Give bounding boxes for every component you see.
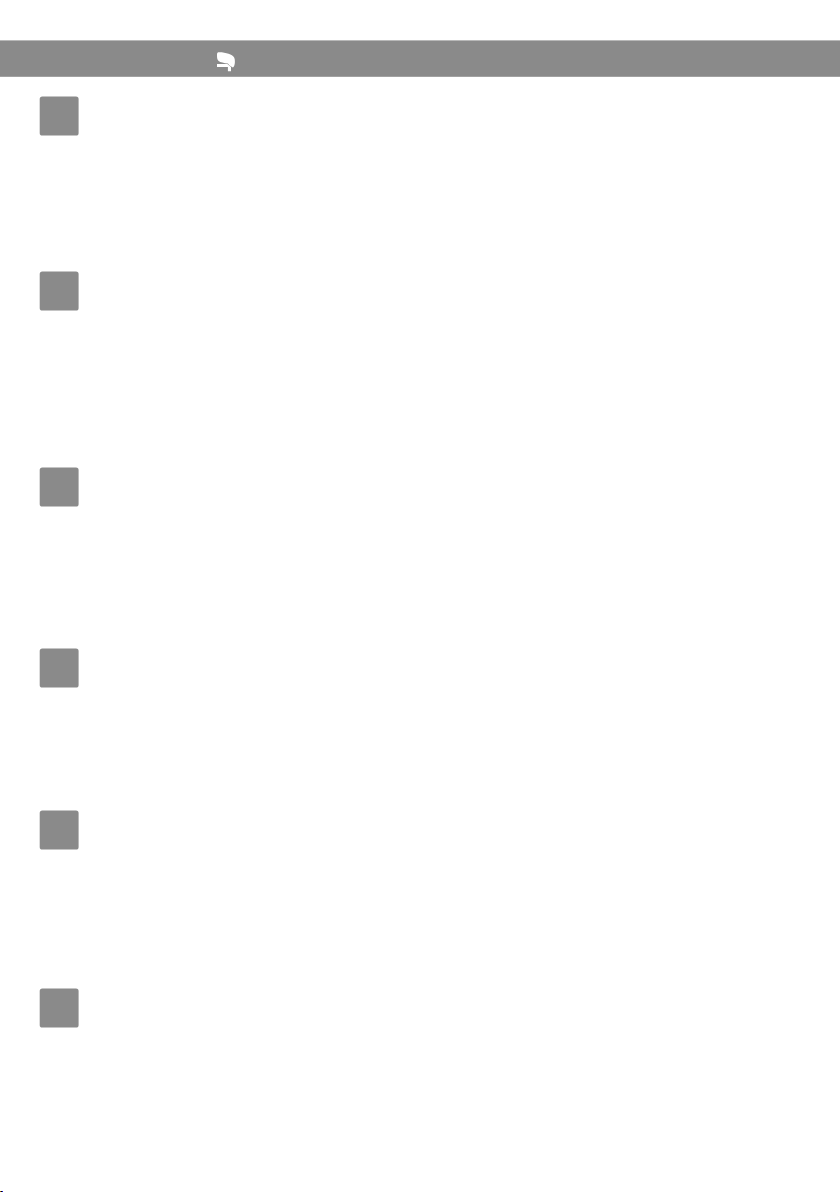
other: Thumbnail	[0, 629, 80, 689]
other: Thumbnail	[0, 252, 80, 312]
button[interactable]: Thumbnail	[0, 791, 840, 969]
other: Thumbnail	[0, 791, 80, 851]
button[interactable]: Thumbnail	[0, 77, 840, 252]
button[interactable]: Thumbnail	[0, 252, 840, 448]
button[interactable]: Thumbnail	[0, 969, 840, 1133]
other: Thumbnail	[0, 448, 80, 508]
other: Thumbnail	[0, 77, 80, 137]
button[interactable]: Thumbnail	[0, 448, 840, 629]
button[interactable]: Home	[205, 40, 245, 77]
other: Thumbnail	[0, 969, 80, 1029]
button[interactable]: Thumbnail	[0, 629, 840, 791]
